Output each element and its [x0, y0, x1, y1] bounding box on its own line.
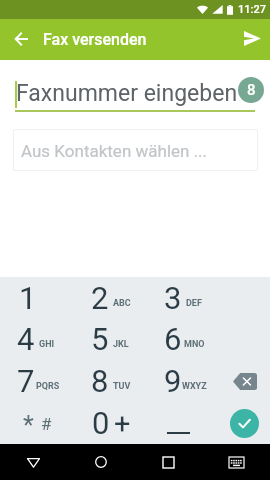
staticText: 3	[164, 280, 182, 316]
staticText: Aus Kontakten wählen ...	[21, 141, 208, 161]
staticText: 0	[92, 405, 110, 441]
button[interactable]: 6	[135, 318, 208, 360]
button[interactable]: 3	[135, 277, 208, 318]
staticText: 5	[91, 321, 109, 357]
staticText: ABC	[113, 298, 131, 309]
staticText: 11:27	[238, 3, 266, 16]
button[interactable]: 1	[0, 277, 62, 318]
staticText: GHI	[39, 339, 55, 350]
button[interactable]: Back	[8, 25, 35, 52]
button[interactable]: Backspace	[208, 360, 270, 402]
button[interactable]: Send	[239, 25, 266, 52]
staticText: WXYZ	[182, 381, 207, 392]
button[interactable]: Back	[0, 444, 67, 480]
button[interactable]: 9	[135, 360, 208, 402]
other: Confirm	[230, 409, 259, 438]
staticText: JKL	[113, 339, 129, 350]
other: Wait	[156, 409, 188, 437]
button[interactable]: Home	[67, 444, 134, 480]
staticText: TUV	[113, 381, 131, 392]
other: Backspace	[233, 373, 257, 390]
staticText: MNO	[184, 339, 205, 350]
staticText: 4	[17, 321, 35, 357]
staticText: Fax versenden	[43, 30, 147, 49]
staticText: DEF	[186, 298, 202, 309]
button[interactable]: Aus Kontakten wählen ...	[13, 129, 258, 171]
button[interactable]: 8	[62, 360, 135, 402]
staticText: Faxnummer eingeben	[16, 80, 238, 107]
button[interactable]: 7	[0, 360, 62, 402]
button[interactable]: Confirm	[208, 402, 270, 444]
button[interactable]: 8	[238, 77, 264, 103]
button[interactable]: Keyboard	[202, 444, 270, 480]
staticText: 6	[164, 321, 182, 357]
staticText: 8	[91, 363, 109, 399]
staticText: 1	[19, 280, 37, 316]
button[interactable]: Recent apps	[134, 444, 202, 480]
button[interactable]: 4	[0, 318, 62, 360]
staticText: 9	[164, 363, 182, 399]
staticText: 2	[91, 280, 109, 316]
button[interactable]: Wait	[135, 402, 208, 444]
button[interactable]: *	[0, 402, 62, 444]
staticText: PQRS	[36, 381, 60, 392]
staticText: #	[41, 414, 52, 434]
staticText: 7	[17, 363, 35, 399]
button[interactable]: 2	[62, 277, 135, 318]
staticText: +	[114, 407, 131, 441]
button[interactable]: 5	[62, 318, 135, 360]
button[interactable]: 0	[62, 402, 135, 444]
staticText: 8	[247, 81, 256, 99]
staticText: *	[23, 411, 34, 440]
